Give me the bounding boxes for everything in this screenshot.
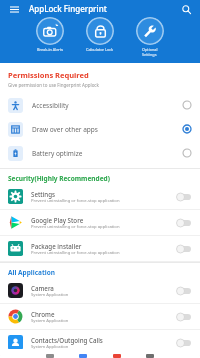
button[interactable]: Toggle Camera	[176, 286, 192, 296]
staticText: Security(Highly Recommended)	[8, 174, 110, 183]
staticText: Package installer	[31, 242, 82, 250]
staticText: Battery optimize	[32, 149, 83, 158]
staticText: Prevent uninstalling or force-stop appli…	[31, 250, 120, 256]
staticText: Optional Settings	[142, 47, 158, 57]
button[interactable]: Package installer	[0, 236, 200, 262]
button[interactable]: Toggle Settings	[176, 192, 192, 202]
button[interactable]: Toggle Chrome	[176, 312, 192, 322]
button[interactable]: Camera	[0, 278, 200, 304]
staticText: Draw over other apps	[32, 125, 98, 134]
button[interactable]: Google Play Store	[0, 210, 200, 236]
button[interactable]	[46, 354, 54, 358]
button[interactable]: Search	[179, 2, 193, 16]
button[interactable]: Accessibility	[0, 93, 200, 117]
staticText: System Application	[31, 344, 69, 350]
staticText: System Application	[31, 292, 69, 298]
staticText: Settings	[31, 190, 56, 198]
staticText: AppLock Fingerprint	[29, 3, 107, 14]
staticText: Give permission to use Fingerprint Applo…	[8, 82, 99, 88]
staticText: System Application	[31, 318, 69, 324]
button[interactable]: Optional Settings	[129, 17, 171, 57]
staticText: Permissions Required	[8, 70, 89, 80]
button[interactable]: Draw over other apps	[0, 117, 200, 141]
button[interactable]: Files	[0, 356, 200, 358]
button[interactable]: Menu	[7, 2, 21, 16]
staticText: Chrome	[31, 310, 55, 318]
staticText: Camera	[31, 284, 54, 292]
staticText: Accessibility	[32, 101, 69, 110]
staticText: Contacts/Outgoing Calls	[31, 336, 103, 344]
staticText: Google Play Store	[31, 216, 84, 224]
staticText: All Application	[8, 268, 55, 277]
button[interactable]: Toggle Package installer	[176, 244, 192, 254]
button[interactable]: Calculator Lock	[79, 17, 121, 52]
button[interactable]: Toggle Contacts/Outgoing Calls	[176, 338, 192, 348]
staticText: Prevent uninstalling or force-stop appli…	[31, 224, 120, 230]
staticText: Prevent uninstalling or force-stop appli…	[31, 198, 120, 204]
button[interactable]: Settings	[0, 184, 200, 210]
button[interactable]: Chrome	[0, 304, 200, 330]
button[interactable]	[146, 354, 154, 358]
button[interactable]: Battery optimize	[0, 141, 200, 165]
staticText: Calculator Lock	[86, 47, 114, 52]
button[interactable]: Break-in Alerts	[29, 17, 71, 52]
button[interactable]: Contacts/Outgoing Calls	[0, 330, 200, 356]
button[interactable]	[113, 354, 121, 358]
button[interactable]: Toggle Google Play Store	[176, 218, 192, 228]
button[interactable]	[79, 354, 87, 358]
staticText: Break-in Alerts	[37, 47, 64, 52]
